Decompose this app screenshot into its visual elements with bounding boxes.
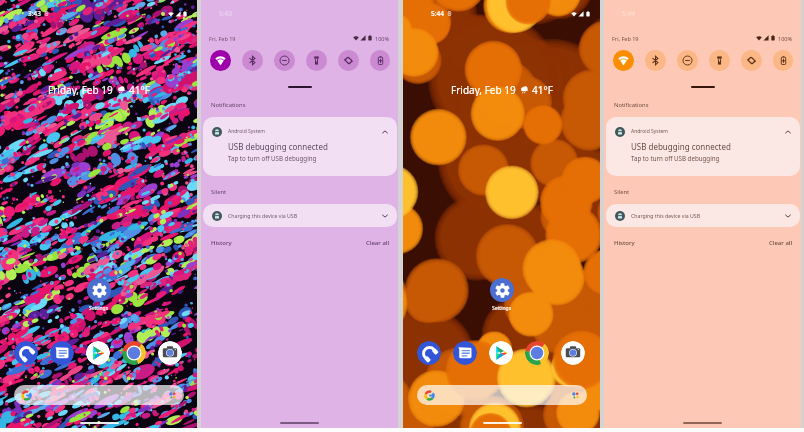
button[interactable]: Bluetooth [645,50,666,71]
button[interactable]: Search [417,385,587,405]
staticText: 5:43 [219,9,232,18]
staticText: History [614,239,635,247]
staticText: USB debugging connected [631,141,731,152]
button[interactable]: Messages [50,341,74,365]
staticText: Notifications [211,101,246,109]
staticText: Fri, Feb 19 [209,35,236,42]
button[interactable]: Charging this device via USB [203,204,397,227]
button[interactable]: Charging this device via USB [606,204,800,227]
button[interactable]: Auto-rotate [741,50,762,71]
staticText: Settings [492,305,512,312]
button[interactable]: Play Store [86,341,110,365]
staticText: Fri, Feb 19 [612,35,639,42]
button[interactable]: Camera [158,341,182,365]
button[interactable]: Do Not Disturb [677,50,698,71]
staticText: Charging this device via USB [228,212,298,219]
button[interactable]: Android System [203,117,397,176]
staticText: Charging this device via USB [631,212,701,219]
button[interactable]: Messages [453,341,477,365]
staticText: Clear all [366,239,390,247]
button[interactable]: History [211,239,232,247]
staticText: Silent [211,188,227,196]
staticText: Friday, Feb 19 [48,83,113,96]
staticText: Android System [631,128,669,135]
staticText: 3:43 [28,9,41,18]
button[interactable]: Chrome [122,341,146,365]
button[interactable]: Phone [417,341,441,365]
button[interactable]: Battery Saver [370,50,390,71]
button[interactable]: Clear all [769,239,793,247]
staticText: Silent [614,188,630,196]
staticText: 100% [375,35,390,42]
button[interactable]: Clear all [366,239,390,247]
button[interactable]: Flashlight [306,50,327,71]
button[interactable]: Android System [606,117,800,176]
staticText: Clear all [769,239,793,247]
button[interactable]: Auto-rotate [338,50,359,71]
staticText: Notifications [614,101,649,109]
button[interactable]: History [614,239,635,247]
button[interactable]: Search [14,385,184,405]
button[interactable]: Do Not Disturb [274,50,295,71]
staticText: 41°F [532,83,553,96]
staticText: 100% [778,35,793,42]
button[interactable]: Flashlight [709,50,730,71]
staticText: Tap to turn off USB debugging [228,154,317,162]
staticText: Tap to turn off USB debugging [631,154,720,162]
button[interactable]: Camera [561,341,585,365]
staticText: Friday, Feb 19 [451,83,516,96]
button[interactable]: Chrome [525,341,549,365]
button[interactable]: Play Store [489,341,513,365]
button[interactable]: Bluetooth [242,50,263,71]
staticText: USB debugging connected [228,141,328,152]
button[interactable]: Wi-Fi [210,50,231,71]
button[interactable]: Wi-Fi [613,50,634,71]
staticText: 5:44 [622,9,635,18]
button[interactable]: Battery Saver [773,50,793,71]
button[interactable]: Settings [490,278,514,302]
staticText: 5:44 [431,9,444,18]
staticText: Android System [228,128,266,135]
button[interactable]: Settings [87,278,111,302]
staticText: History [211,239,232,247]
staticText: Settings [89,305,109,312]
button[interactable]: Phone [14,341,38,365]
staticText: 41°F [129,83,150,96]
